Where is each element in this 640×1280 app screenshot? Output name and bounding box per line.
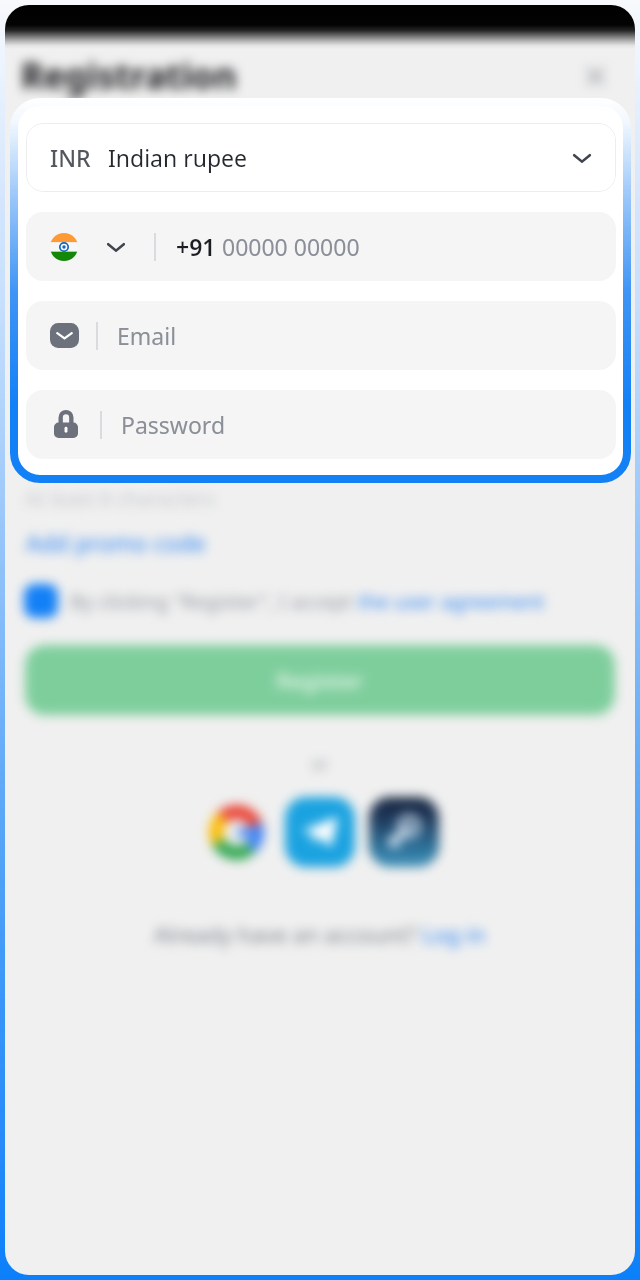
button[interactable]: Register	[25, 645, 615, 715]
button[interactable]: +91	[26, 212, 616, 281]
button[interactable]: Close	[579, 60, 611, 92]
staticText: At least 8 characters	[25, 485, 215, 512]
button[interactable]: Email	[26, 301, 616, 370]
staticText: Registration	[21, 52, 237, 100]
button[interactable]: Sign in with Steam	[369, 797, 439, 867]
button[interactable]: Sign in with Google	[201, 797, 271, 867]
button[interactable]: Sign in with Telegram	[285, 797, 355, 867]
staticText: Email	[117, 320, 177, 351]
staticText: INR	[50, 142, 91, 173]
button[interactable]: Add promo code	[26, 527, 206, 558]
button[interactable]: Log in	[422, 919, 486, 949]
staticText: Indian rupee	[108, 142, 247, 173]
staticText: +91	[176, 231, 222, 262]
button[interactable]: the user agreement	[358, 588, 545, 615]
staticText: By clicking "Register", I accept	[70, 588, 358, 615]
staticText: Register	[276, 665, 364, 695]
staticText: Password	[121, 409, 226, 440]
button[interactable]: INR	[26, 123, 616, 192]
button[interactable]: Password	[26, 390, 616, 459]
staticText: 00000 00000	[222, 231, 360, 262]
staticText: Already have an account?	[154, 919, 422, 949]
button[interactable]: Accept user agreement	[24, 584, 58, 618]
